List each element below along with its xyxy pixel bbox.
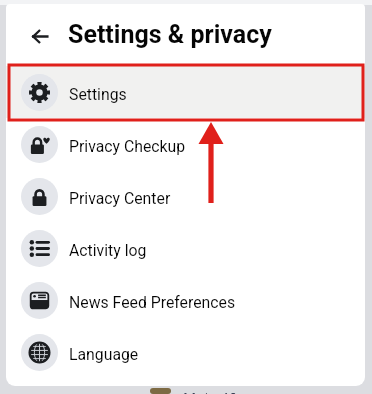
staticText: Privacy Center (69, 189, 171, 208)
button[interactable]: Privacy Center (6, 170, 365, 222)
button[interactable]: Back (26, 23, 54, 49)
button[interactable]: Language (6, 326, 365, 378)
staticText: News Feed Preferences (69, 293, 236, 312)
staticText: Activity log (69, 241, 147, 260)
button[interactable]: Activity log (6, 222, 365, 274)
button[interactable]: Settings (6, 66, 365, 118)
staticText: Settings & privacy (68, 20, 272, 49)
button[interactable]: Privacy Checkup (6, 118, 365, 170)
staticText: Settings (69, 85, 127, 104)
button[interactable]: News Feed Preferences (6, 274, 365, 326)
staticText: Language (69, 345, 139, 364)
staticText: Meta AI (183, 387, 236, 394)
staticText: Privacy Checkup (69, 137, 186, 156)
